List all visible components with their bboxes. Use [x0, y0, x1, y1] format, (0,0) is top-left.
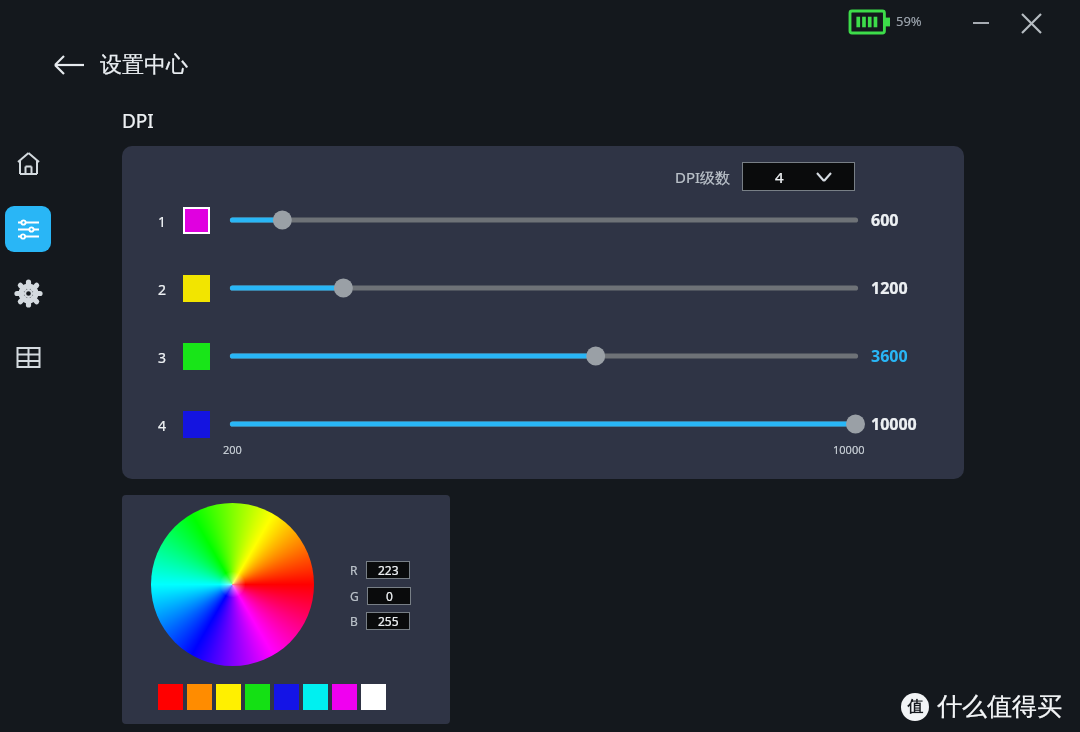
staticText: 0 [386, 588, 393, 604]
staticText: 1200 [871, 277, 908, 299]
staticText: 设置中心 [100, 51, 188, 79]
staticText: 200 [223, 442, 242, 457]
staticText: 255 [378, 613, 399, 629]
button[interactable]: Close [1008, 2, 1054, 44]
button[interactable]: Colour wheel [151, 503, 314, 666]
button[interactable]: 223 [366, 561, 410, 579]
button[interactable]: Home [5, 140, 51, 186]
button[interactable]: 255 [366, 612, 410, 630]
staticText: 4 [775, 167, 784, 187]
button[interactable]: Settings [5, 270, 51, 316]
staticText: 1 [158, 212, 167, 231]
button[interactable]: DPI slider [223, 209, 865, 231]
staticText: 223 [378, 562, 399, 578]
staticText: DPI级数 [675, 167, 731, 187]
staticText: 10000 [833, 442, 865, 457]
button[interactable]: DPI slider [223, 277, 865, 299]
staticText: 600 [871, 209, 899, 231]
button[interactable]: Table [5, 334, 51, 380]
staticText: 3 [158, 348, 167, 367]
staticText: 4 [158, 416, 167, 435]
button[interactable]: Minimize [958, 2, 1004, 44]
staticText: 3600 [871, 345, 908, 367]
staticText: R [350, 562, 358, 578]
button[interactable]: DPI slider [223, 345, 865, 367]
staticText: DPI [122, 108, 154, 134]
staticText: 10000 [871, 413, 917, 435]
staticText: 什么值得买 [937, 691, 1062, 722]
button[interactable]: 4 [742, 162, 855, 191]
button[interactable]: Colour for level 1 [183, 207, 210, 234]
button[interactable]: 0 [367, 587, 411, 605]
staticText: 2 [158, 280, 167, 299]
other: Battery 59 percent [850, 11, 890, 33]
button[interactable]: Back [46, 44, 92, 86]
button[interactable]: Settings sliders [5, 206, 51, 252]
button[interactable]: DPI slider [223, 413, 865, 435]
staticText: 59% [896, 12, 922, 30]
staticText: 值 [907, 697, 923, 717]
staticText: G [350, 588, 359, 604]
staticText: B [350, 613, 358, 629]
